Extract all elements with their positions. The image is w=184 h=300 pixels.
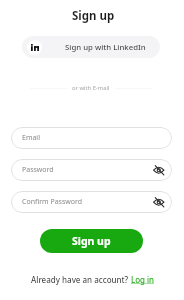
button[interactable]: Toggle password visibility bbox=[150, 193, 168, 211]
button[interactable]: Log in bbox=[131, 274, 155, 285]
staticText: Confirm Password bbox=[22, 197, 83, 207]
button[interactable]: Sign up bbox=[40, 229, 143, 253]
button[interactable]: Password bbox=[11, 159, 172, 181]
staticText: or with E-mail bbox=[72, 84, 110, 92]
staticText: Sign up bbox=[72, 234, 111, 248]
button[interactable]: Confirm Password bbox=[11, 191, 172, 213]
button[interactable]: Sign up with LinkedIn bbox=[22, 36, 160, 58]
staticText: Email bbox=[22, 133, 40, 143]
staticText: Password bbox=[22, 165, 54, 175]
button[interactable]: Email bbox=[11, 127, 172, 149]
staticText: Already have an account? bbox=[31, 274, 131, 285]
button[interactable]: Toggle password visibility bbox=[150, 161, 168, 179]
staticText: Sign up bbox=[72, 8, 115, 24]
staticText: Log in bbox=[131, 274, 155, 285]
staticText: Sign up with LinkedIn bbox=[65, 42, 146, 53]
